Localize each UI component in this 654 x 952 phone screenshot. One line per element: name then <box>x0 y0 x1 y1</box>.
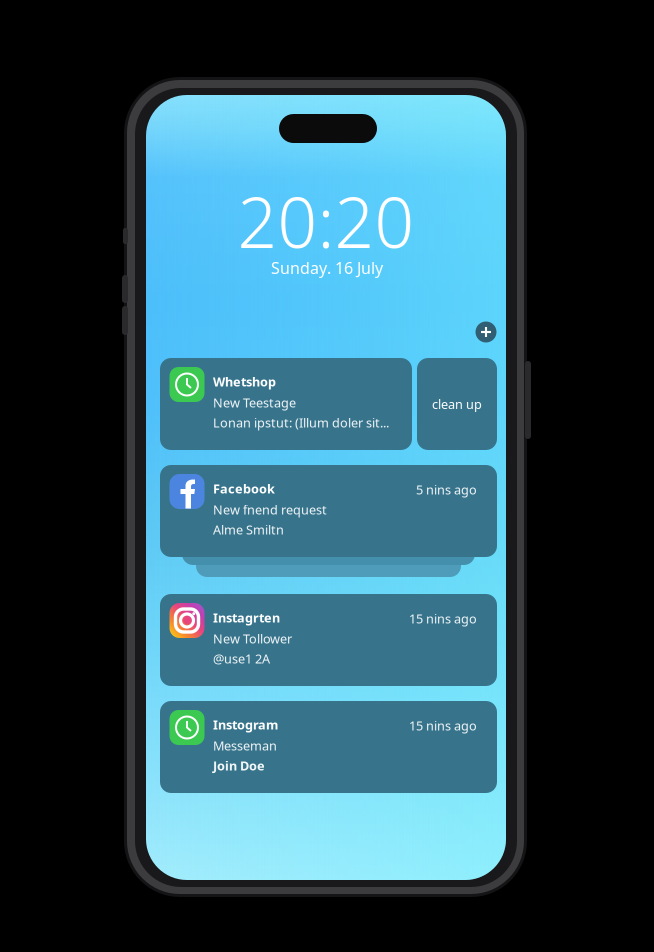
button[interactable]: Instagrten <box>160 594 497 686</box>
staticText: New Tollower <box>213 630 292 647</box>
staticText: Whetshop <box>213 373 276 390</box>
staticText: 15 nins ago <box>409 610 477 627</box>
button[interactable]: Facebook <box>160 465 497 557</box>
staticText: Alme Smiltn <box>213 521 284 538</box>
button[interactable]: clean up <box>417 358 497 450</box>
button[interactable]: Whetshop <box>160 358 412 450</box>
staticText: Sunday. 16 July <box>271 257 383 279</box>
button[interactable]: Instogram <box>160 701 497 793</box>
staticText: Facebook <box>213 480 275 497</box>
staticText: Join Doe <box>213 757 265 774</box>
staticText: @use1 2A <box>213 650 270 667</box>
staticText: New fnend request <box>213 501 327 518</box>
staticText: Instogram <box>213 716 278 733</box>
staticText: Instagrten <box>213 609 280 626</box>
staticText: New Teestage <box>213 394 296 411</box>
staticText: 15 nins ago <box>409 717 477 734</box>
staticText: Lonan ipstut: (Illum doler sit... <box>213 414 389 431</box>
staticText: clean up <box>432 395 482 413</box>
button[interactable]: Add widget <box>471 317 501 347</box>
staticText: 20:20 <box>237 174 414 268</box>
staticText: Messeman <box>213 737 277 754</box>
staticText: 5 nins ago <box>416 481 477 498</box>
